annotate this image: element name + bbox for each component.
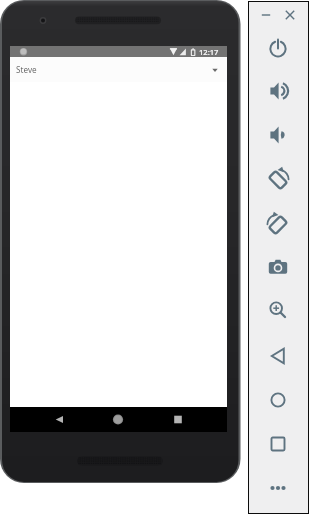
staticText: 12:17 <box>199 47 219 57</box>
button[interactable]: Take screenshot <box>264 253 292 281</box>
button[interactable]: Recent apps <box>164 407 192 432</box>
button[interactable]: Close <box>276 1 304 29</box>
button[interactable]: More options <box>264 474 292 502</box>
button[interactable]: Rotate left <box>264 165 292 193</box>
button[interactable]: Expand dropdown <box>208 63 222 77</box>
button[interactable]: Zoom <box>264 296 292 324</box>
button[interactable]: Rotate right <box>264 210 292 238</box>
button[interactable]: Back <box>264 342 292 370</box>
button[interactable]: Power <box>264 34 292 62</box>
button[interactable]: Minimize <box>252 1 280 29</box>
button[interactable]: Overview <box>264 430 292 458</box>
button[interactable]: Volume up <box>264 77 292 105</box>
button[interactable]: Home <box>264 386 292 414</box>
button[interactable]: Back <box>45 407 73 432</box>
button[interactable]: Steve <box>10 57 227 82</box>
staticText: Steve <box>16 64 37 75</box>
button[interactable]: Home <box>104 407 132 432</box>
button[interactable]: Volume down <box>264 121 292 149</box>
